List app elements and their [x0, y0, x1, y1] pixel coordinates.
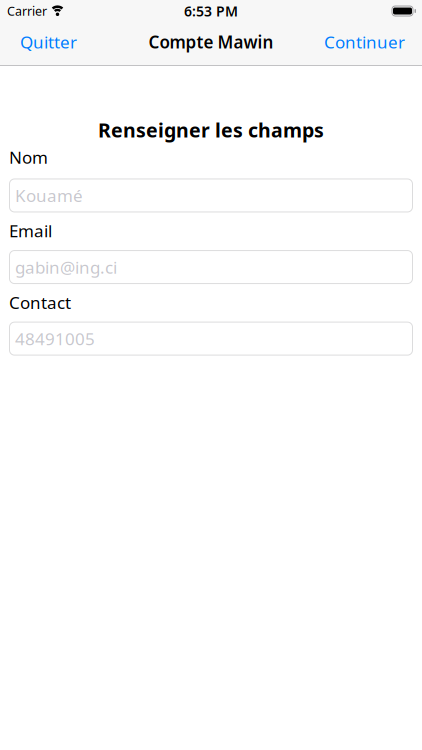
staticText: 6:53 PM: [184, 2, 238, 20]
textField[interactable]: 48491005: [16, 324, 413, 354]
staticText: Quitter: [20, 31, 77, 53]
staticText: Contact: [9, 291, 71, 314]
staticText: Kouamé: [15, 184, 83, 207]
textField[interactable]: gabin@ing.ci: [16, 252, 413, 282]
staticText: Compte Mawin: [148, 31, 273, 53]
staticText: Kouamé: [16, 180, 105, 210]
staticText: 48491005: [15, 327, 95, 350]
staticText: Nom: [9, 146, 48, 168]
staticText: 48491005: [16, 324, 120, 354]
staticText: gabin@ing.ci: [15, 256, 117, 278]
textField[interactable]: Kouamé: [16, 180, 413, 210]
button[interactable]: Quitter: [20, 31, 77, 53]
staticText: Carrier: [7, 3, 47, 19]
staticText: Renseigner les champs: [98, 117, 324, 143]
staticText: Email: [9, 219, 52, 242]
staticText: gabin@ing.ci: [16, 252, 154, 282]
staticText: Continuer: [324, 31, 405, 53]
button[interactable]: Continuer: [324, 31, 405, 53]
